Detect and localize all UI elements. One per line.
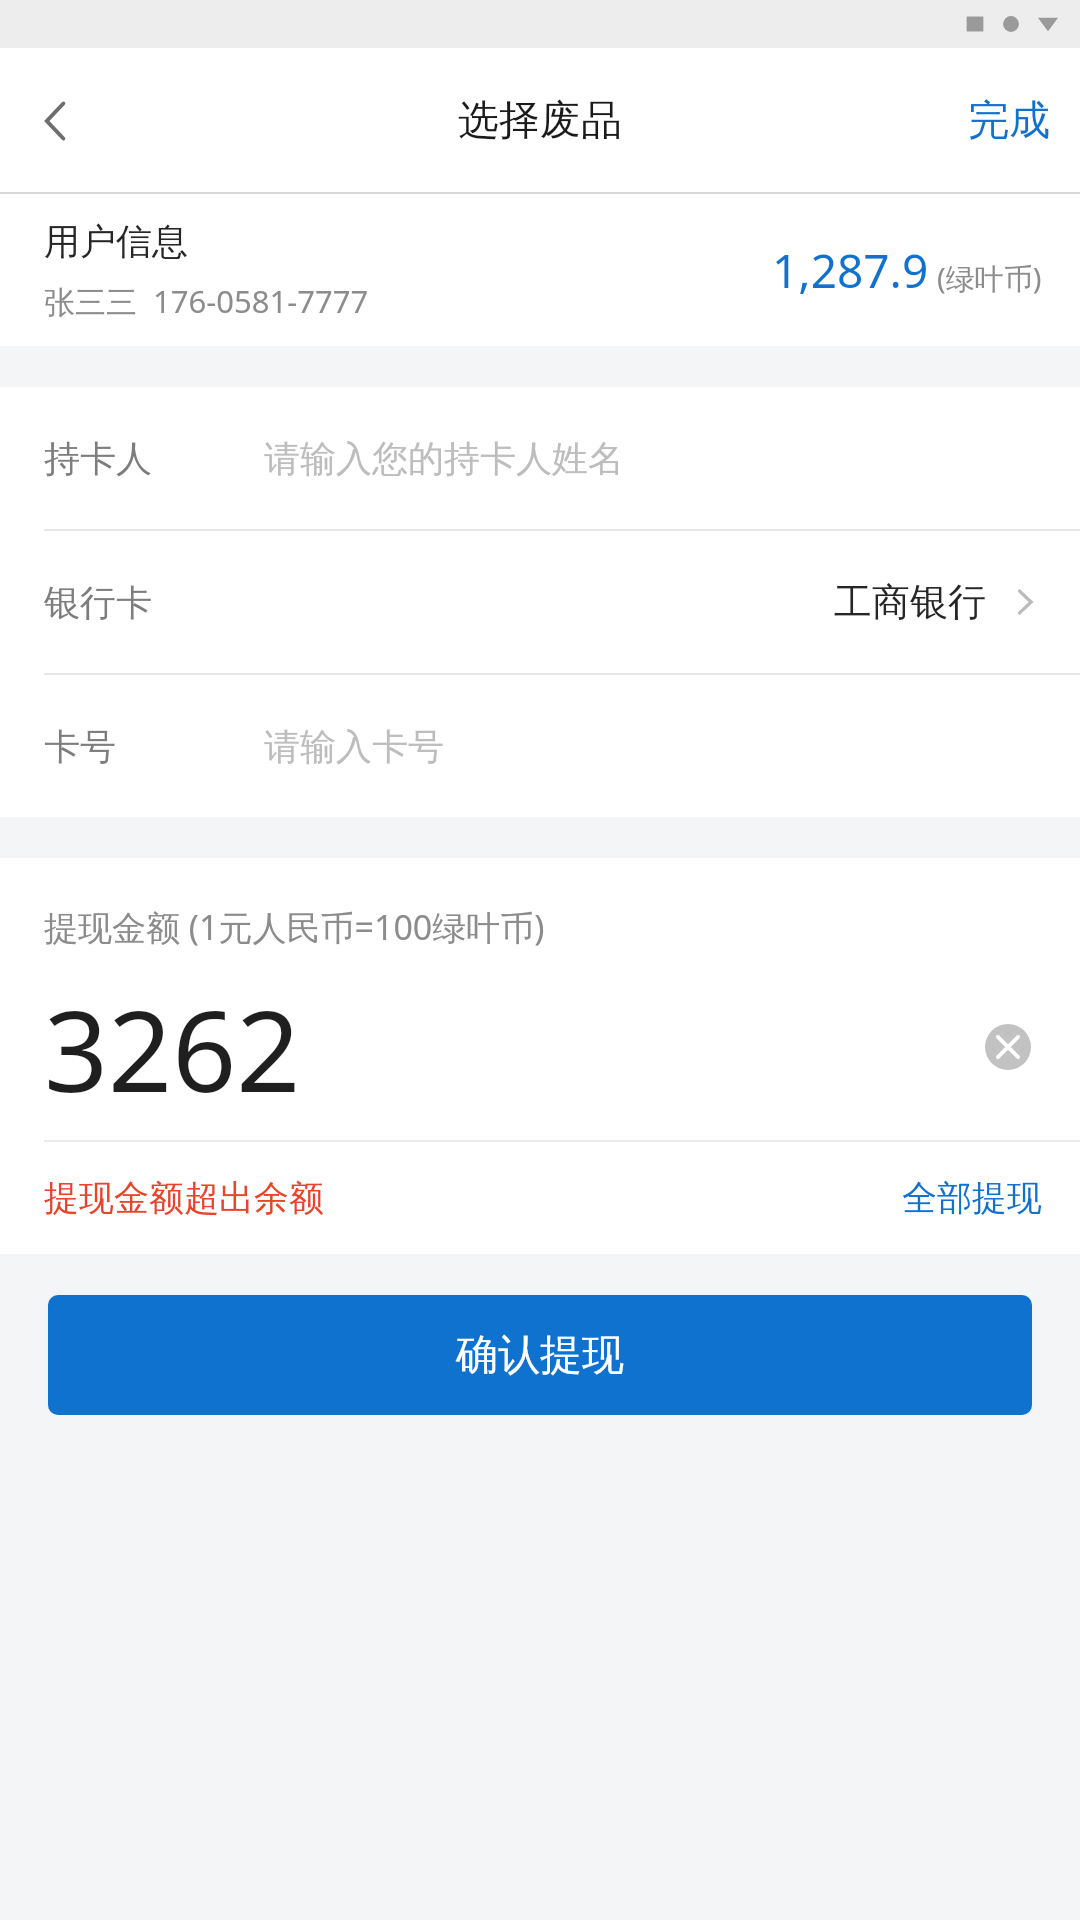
button[interactable]: 持卡人 — [0, 387, 1080, 529]
staticText: 张三三 176-0581-7777 — [44, 280, 369, 322]
staticText: 持卡人 — [44, 436, 152, 481]
staticText: 确认提现 — [456, 1329, 624, 1382]
staticText: 完成 — [968, 95, 1050, 147]
staticText: 选择废品 — [458, 95, 622, 147]
staticText: 用户信息 — [44, 219, 188, 264]
staticText: 提现金额 (1元人民币=100绿叶币) — [44, 904, 545, 950]
staticText: (绿叶币) — [937, 258, 1042, 298]
staticText: 全部提现 — [902, 1176, 1042, 1220]
staticText: 提现金额超出余额 — [44, 1176, 324, 1220]
button[interactable]: Back — [18, 83, 94, 159]
button[interactable]: 确认提现 — [48, 1295, 1032, 1415]
button[interactable]: 完成 — [938, 75, 1080, 167]
button[interactable]: 卡号 — [0, 675, 1080, 817]
staticText: 请输入您的持卡人姓名 — [264, 436, 624, 481]
button[interactable]: 银行卡 — [0, 531, 1080, 673]
staticText: 3262 — [44, 972, 301, 1122]
button[interactable]: 全部提现 — [864, 1160, 1080, 1236]
button[interactable]: Clear — [974, 1013, 1042, 1081]
staticText: 银行卡 — [44, 580, 152, 625]
staticText: 请输入卡号 — [264, 724, 444, 769]
staticText: 卡号 — [44, 724, 116, 769]
staticText: 1,287.9 — [772, 239, 929, 302]
staticText: 工商银行 — [834, 578, 986, 626]
